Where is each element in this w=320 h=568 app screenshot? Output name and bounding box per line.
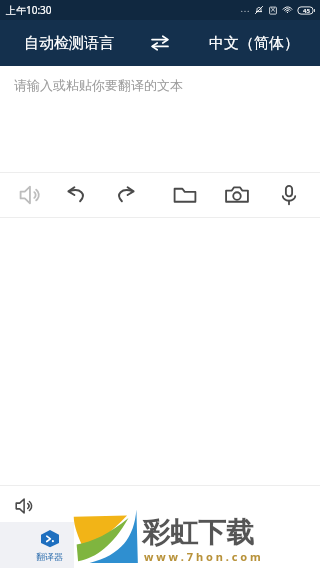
button[interactable]: 中文（简体） [187,20,320,66]
staticText: 请输入或粘贴你要翻译的文本 [14,77,183,93]
staticText: 上午10:30 [6,3,52,17]
button[interactable]: Speak [14,178,48,212]
button[interactable]: Swap languages [133,20,187,66]
staticText: 彩虹下载 [142,515,254,550]
button[interactable]: Undo [60,178,94,212]
button[interactable]: Documents [168,178,202,212]
button[interactable]: 请输入或粘贴你要翻译的文本 [0,66,320,172]
button[interactable]: Microphone [272,178,306,212]
staticText: 自动检测语言 [24,34,114,53]
button[interactable]: Redo [108,178,142,212]
staticText: w w w . 7 h o n . c o m [144,549,261,564]
staticText: 翻译器 [36,551,63,562]
button[interactable]: Speak translation [10,491,40,521]
button[interactable]: Camera [220,178,254,212]
staticText: 45 [303,7,310,15]
staticText: 中文（简体） [209,34,299,53]
button[interactable]: 自动检测语言 [0,20,133,66]
